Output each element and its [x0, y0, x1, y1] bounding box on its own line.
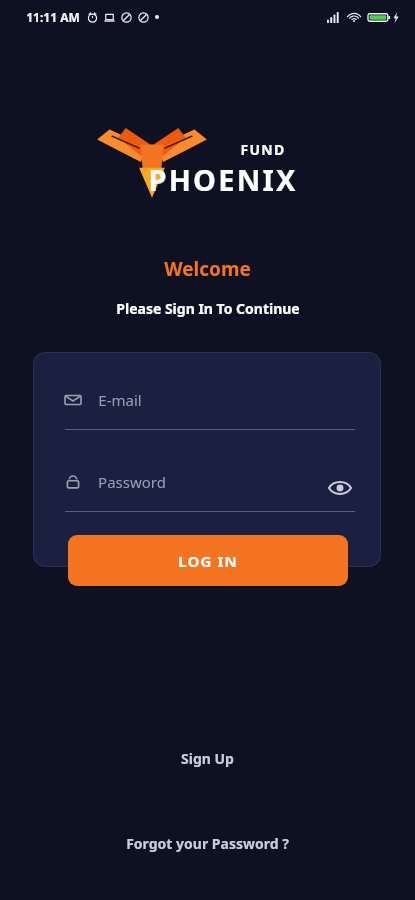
- staticText: E-mail: [98, 390, 142, 410]
- staticText: Welcome: [164, 256, 251, 282]
- button[interactable]: E-mail: [65, 390, 355, 430]
- staticText: Forgot your Password ?: [126, 834, 289, 853]
- staticText: Password: [98, 472, 166, 492]
- button[interactable]: Sign Up: [159, 742, 256, 775]
- staticText: FUND: [240, 140, 286, 159]
- staticText: LOG IN: [178, 551, 238, 571]
- staticText: PHOENIX: [148, 160, 298, 199]
- button[interactable]: Forgot your Password ?: [104, 827, 311, 860]
- staticText: Please Sign In To Continue: [116, 299, 300, 318]
- button[interactable]: Password: [65, 472, 355, 512]
- staticText: Sign Up: [181, 749, 234, 768]
- button[interactable]: LOG IN: [68, 535, 348, 586]
- staticText: 11:11 AM: [26, 9, 80, 25]
- button[interactable]: Show password: [325, 473, 355, 503]
